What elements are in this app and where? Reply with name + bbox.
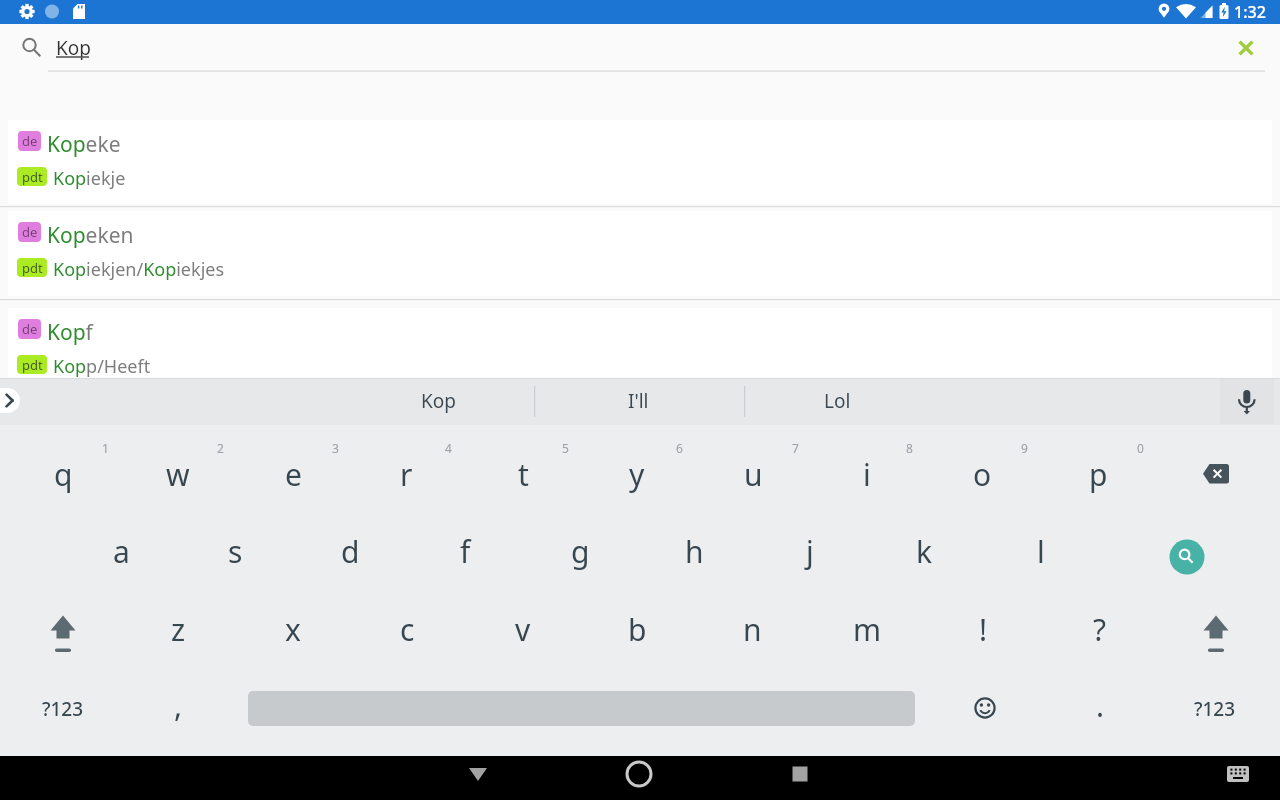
staticText: b: [628, 609, 647, 650]
staticText: 9: [1021, 440, 1028, 456]
button[interactable]: [13, 594, 113, 666]
staticText: i: [863, 454, 871, 495]
button[interactable]: g: [530, 515, 630, 587]
staticText: 1: [102, 440, 109, 456]
button[interactable]: j: [760, 515, 860, 587]
button[interactable]: de: [8, 211, 1272, 296]
button[interactable]: !: [933, 593, 1033, 665]
button[interactable]: x: [243, 593, 343, 665]
staticText: c: [400, 609, 415, 650]
staticText: v: [515, 609, 531, 650]
staticText: ,: [174, 685, 183, 726]
button[interactable]: [1166, 438, 1266, 510]
button[interactable]: .: [1050, 669, 1150, 741]
button[interactable]: Lol: [742, 379, 932, 423]
staticText: w: [166, 454, 190, 495]
button[interactable]: [1146, 516, 1246, 588]
button[interactable]: u: [703, 438, 803, 510]
button[interactable]: n: [702, 593, 802, 665]
button[interactable]: k: [874, 515, 974, 587]
button[interactable]: m: [817, 593, 917, 665]
button[interactable]: [1220, 378, 1274, 424]
button[interactable]: h: [644, 515, 744, 587]
staticText: s: [228, 531, 243, 572]
button[interactable]: Kop: [343, 379, 533, 423]
button[interactable]: v: [473, 593, 573, 665]
button[interactable]: [0, 24, 1280, 84]
staticText: Kopiekjen/Kopiekjes: [53, 257, 225, 282]
staticText: u: [744, 454, 763, 495]
staticText: Kopeke: [47, 130, 121, 159]
staticText: !: [979, 609, 988, 650]
staticText: pdt: [22, 168, 43, 186]
staticText: Kopf: [47, 318, 93, 347]
button[interactable]: e: [243, 438, 343, 510]
staticText: de: [22, 223, 38, 241]
staticText: o: [973, 454, 992, 495]
staticText: .: [1096, 685, 1105, 726]
staticText: 3: [332, 440, 339, 456]
button[interactable]: o: [932, 438, 1032, 510]
button[interactable]: ?: [1050, 593, 1150, 665]
button[interactable]: [1212, 756, 1264, 800]
staticText: n: [743, 609, 762, 650]
staticText: g: [571, 531, 590, 572]
button[interactable]: [770, 756, 830, 800]
staticText: ?: [1093, 609, 1107, 650]
staticText: 1:32: [1234, 1, 1266, 23]
staticText: a: [113, 531, 130, 572]
button[interactable]: [1166, 594, 1266, 666]
button[interactable]: l: [991, 515, 1091, 587]
button[interactable]: [448, 756, 508, 800]
staticText: t: [518, 454, 529, 495]
button[interactable]: I'll: [543, 379, 733, 423]
button[interactable]: t: [473, 438, 573, 510]
staticText: r: [400, 454, 413, 495]
button[interactable]: de: [8, 120, 1272, 204]
button[interactable]: q: [13, 438, 113, 510]
button[interactable]: d: [300, 515, 400, 587]
staticText: 6: [676, 440, 683, 456]
button[interactable]: [1232, 34, 1260, 62]
button[interactable]: b: [587, 593, 687, 665]
button[interactable]: p: [1048, 438, 1148, 510]
button[interactable]: de: [8, 308, 1272, 378]
staticText: Kopeken: [47, 221, 134, 250]
staticText: p: [1089, 454, 1108, 495]
staticText: 8: [906, 440, 913, 456]
button[interactable]: [609, 756, 669, 800]
button[interactable]: y: [587, 438, 687, 510]
button[interactable]: f: [415, 515, 515, 587]
button[interactable]: a: [71, 515, 171, 587]
staticText: y: [629, 454, 645, 495]
button[interactable]: [0, 385, 26, 417]
button[interactable]: c: [357, 593, 457, 665]
staticText: 4: [445, 440, 452, 456]
button[interactable]: w: [128, 438, 228, 510]
staticText: 2: [217, 440, 224, 456]
button[interactable]: s: [185, 515, 285, 587]
button[interactable]: ?123: [13, 673, 113, 745]
button[interactable]: [955, 673, 1015, 743]
staticText: pdt: [22, 259, 43, 277]
staticText: z: [171, 609, 186, 650]
staticText: de: [22, 132, 38, 150]
staticText: l: [1037, 531, 1045, 572]
staticText: Lol: [824, 388, 851, 414]
staticText: d: [341, 531, 360, 572]
staticText: Kop: [56, 35, 91, 61]
staticText: x: [285, 609, 301, 650]
staticText: I'll: [628, 388, 649, 414]
staticText: m: [853, 609, 882, 650]
button[interactable]: i: [817, 438, 917, 510]
staticText: 7: [792, 440, 799, 456]
staticText: de: [22, 320, 38, 338]
button[interactable]: r: [356, 438, 456, 510]
button[interactable]: ?123: [1165, 673, 1265, 745]
button[interactable]: ,: [128, 669, 228, 741]
staticText: k: [916, 531, 933, 572]
button[interactable]: z: [128, 593, 228, 665]
staticText: Kop: [421, 388, 456, 414]
staticText: Kopp/Heeft: [53, 354, 151, 379]
